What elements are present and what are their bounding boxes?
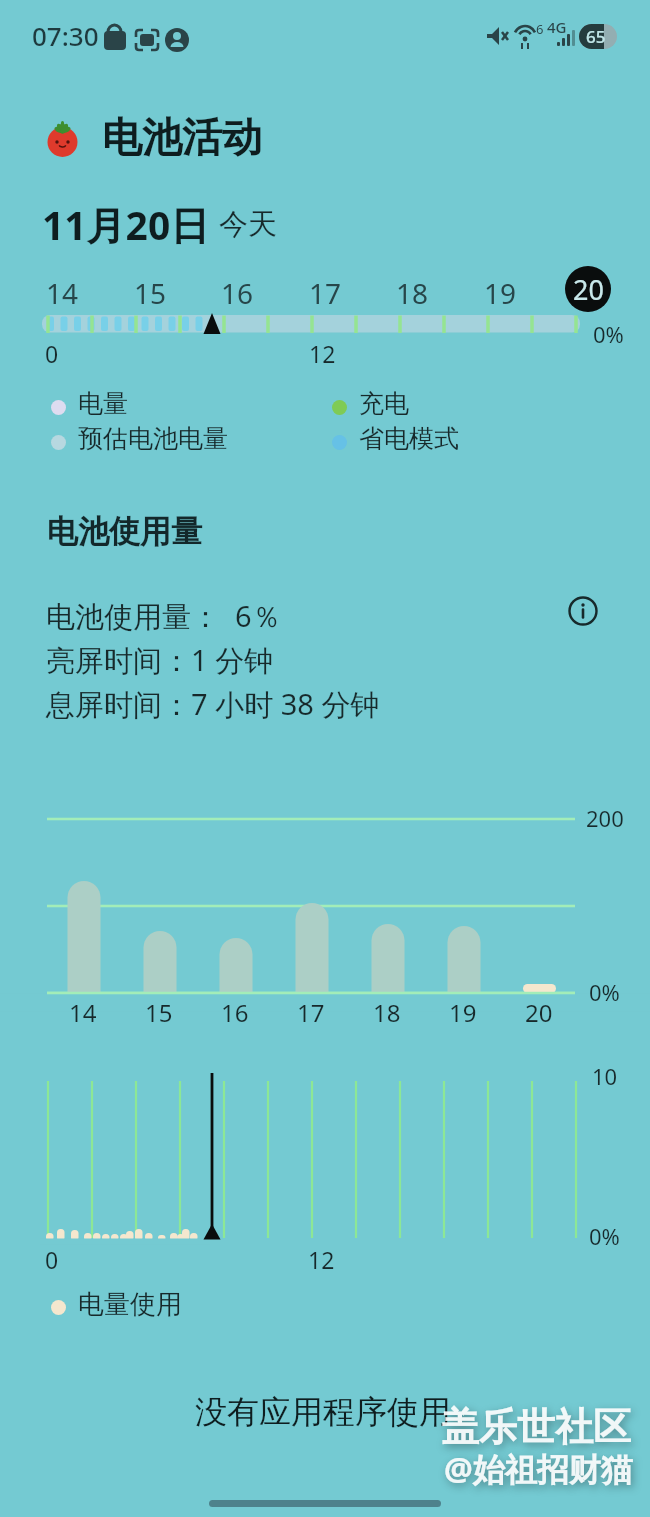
staticText: 65 bbox=[586, 25, 606, 48]
staticText: 200 bbox=[586, 803, 624, 833]
staticText: 电池使用量 bbox=[47, 512, 202, 551]
staticText: 14 bbox=[46, 274, 79, 312]
staticText: 电量 bbox=[78, 388, 128, 419]
staticText: 省电模式 bbox=[359, 423, 459, 454]
staticText: 电量使用 bbox=[78, 1288, 182, 1321]
staticText: 19 bbox=[449, 996, 477, 1029]
staticText: 18 bbox=[373, 996, 401, 1029]
staticText: 预估电池电量 bbox=[78, 423, 228, 454]
staticText: 15 bbox=[134, 274, 167, 312]
staticText: 18 bbox=[396, 274, 429, 312]
staticText: 17 bbox=[309, 274, 342, 312]
staticText: 19 bbox=[484, 274, 517, 312]
button[interactable] bbox=[569, 597, 597, 625]
staticText: 14 bbox=[69, 996, 97, 1029]
staticText: 0% bbox=[589, 1221, 620, 1251]
staticText: 17 bbox=[297, 996, 325, 1029]
staticText: 16 bbox=[221, 274, 254, 312]
staticText: 充电 bbox=[359, 388, 409, 419]
staticText: 20 bbox=[525, 996, 553, 1029]
staticText: 11月20日 bbox=[42, 198, 210, 251]
staticText: 20 bbox=[573, 271, 604, 308]
staticText: 4G bbox=[547, 17, 567, 37]
staticText: 12 bbox=[308, 1244, 335, 1275]
staticText: 盖乐世社区 bbox=[441, 1403, 631, 1451]
staticText: 0 bbox=[45, 1244, 59, 1275]
button[interactable]: 20 bbox=[565, 266, 611, 312]
staticText: 今天 bbox=[219, 206, 277, 243]
staticText: 亮屏时间：1 分钟 bbox=[46, 640, 274, 680]
staticText: 0% bbox=[593, 319, 624, 349]
staticText: 0 bbox=[45, 338, 59, 369]
staticText: 15 bbox=[145, 996, 173, 1029]
staticText: 6 bbox=[536, 20, 544, 38]
staticText: 电池使用量： 6％ bbox=[46, 596, 281, 636]
staticText: 0% bbox=[589, 977, 620, 1007]
staticText: 息屏时间：7 小时 38 分钟 bbox=[46, 684, 380, 724]
staticText: 12 bbox=[309, 338, 336, 369]
staticText: 16 bbox=[221, 996, 249, 1029]
staticText: 电池活动 bbox=[102, 112, 262, 162]
staticText: 10 bbox=[592, 1061, 618, 1091]
staticText: @始祖招财猫 bbox=[444, 1447, 633, 1491]
staticText: 07:30 bbox=[32, 18, 99, 53]
staticText: 没有应用程序使用 bbox=[0, 1392, 648, 1432]
